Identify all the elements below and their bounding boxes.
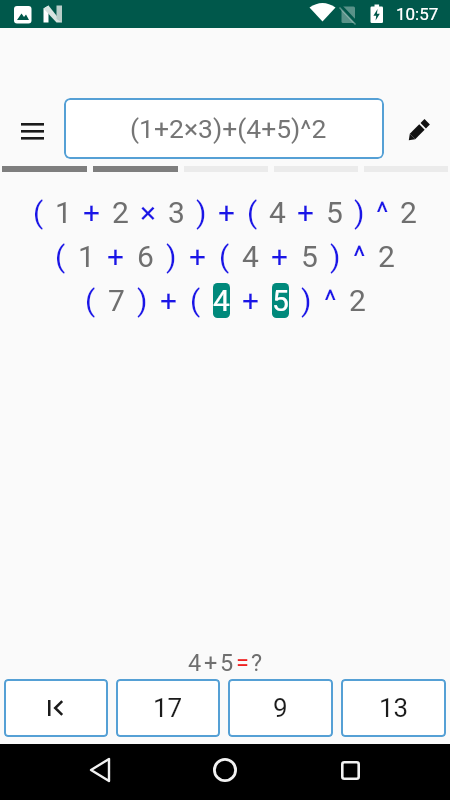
staticText: 9	[273, 693, 288, 723]
staticText: (	[85, 283, 96, 318]
staticText: (1+2×3)+(4+5)^2	[130, 113, 327, 144]
staticText: 13	[379, 693, 409, 723]
staticText: 2	[378, 239, 395, 274]
staticText: 1	[55, 195, 72, 230]
staticText: )	[166, 239, 177, 274]
staticText: 2	[112, 195, 129, 230]
staticText: (	[55, 239, 66, 274]
staticText: 17	[153, 693, 183, 723]
staticText: )	[137, 283, 148, 318]
staticText: +	[242, 283, 260, 318]
staticText: =	[236, 649, 249, 677]
staticText: )	[301, 283, 312, 318]
staticText: 1	[78, 239, 95, 274]
button[interactable]: (1+2×3)+(4+5)^2	[64, 98, 384, 159]
staticText: +	[204, 649, 218, 677]
staticText: ^	[376, 195, 389, 230]
staticText: +	[297, 195, 315, 230]
staticText: +	[218, 195, 236, 230]
staticText: +	[271, 239, 289, 274]
staticText: 4	[188, 649, 202, 677]
staticText: +	[107, 239, 125, 274]
button[interactable]	[200, 745, 250, 795]
staticText: +	[189, 239, 207, 274]
staticText: ^	[353, 239, 366, 274]
staticText: 5	[272, 283, 289, 318]
button[interactable]: 17	[116, 679, 220, 737]
staticText: ?	[251, 649, 263, 677]
staticText: +	[83, 195, 101, 230]
staticText: 6	[137, 239, 154, 274]
staticText: 4	[213, 283, 230, 318]
staticText: )	[330, 239, 341, 274]
staticText: 2	[400, 195, 417, 230]
button[interactable]	[396, 109, 440, 153]
staticText: 4	[269, 195, 286, 230]
staticText: 2	[349, 283, 366, 318]
staticText: 5	[326, 195, 343, 230]
staticText: 3	[168, 195, 185, 230]
staticText: 7	[108, 283, 125, 318]
staticText: (	[190, 283, 201, 318]
button[interactable]	[75, 745, 125, 795]
button[interactable]	[325, 745, 375, 795]
staticText: ^	[324, 283, 337, 318]
staticText: 5	[301, 239, 318, 274]
staticText: +	[160, 283, 178, 318]
staticText: )	[196, 195, 207, 230]
button[interactable]	[10, 109, 54, 153]
staticText: (	[33, 195, 44, 230]
staticText: 4	[242, 239, 259, 274]
button[interactable]: 9	[228, 679, 333, 737]
staticText: 10:57	[396, 4, 439, 24]
staticText: )	[354, 195, 365, 230]
button[interactable]: 13	[341, 679, 446, 737]
staticText: 5	[220, 649, 234, 677]
staticText: (	[219, 239, 230, 274]
staticText: (	[247, 195, 258, 230]
button[interactable]	[4, 679, 108, 737]
staticText: ×	[140, 195, 157, 230]
